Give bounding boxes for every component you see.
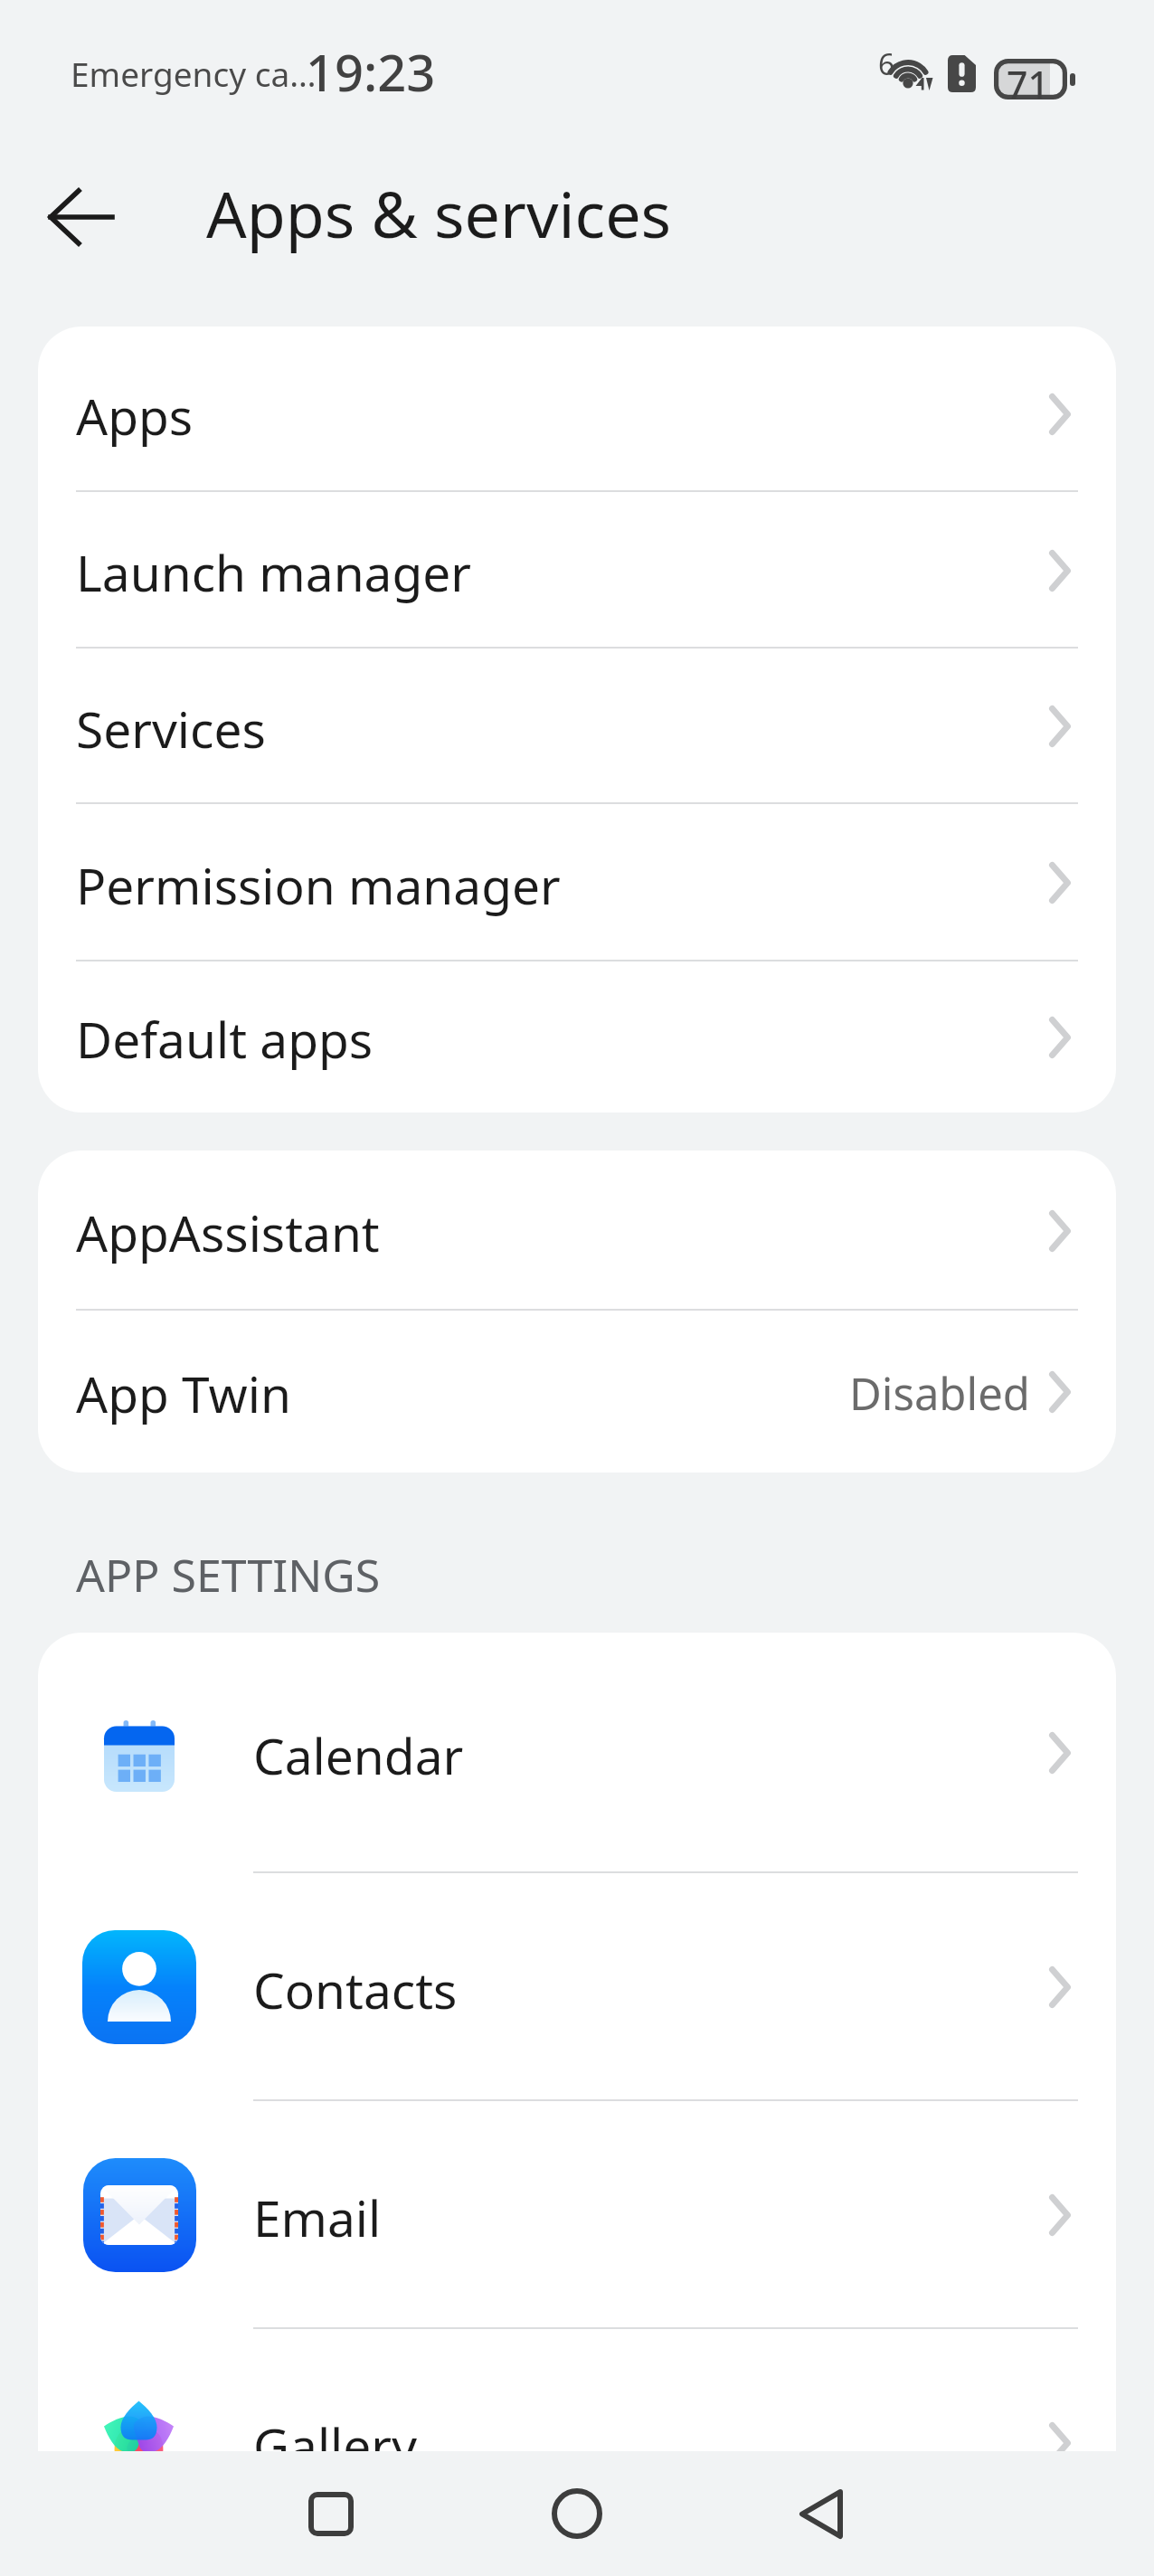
staticText: Emergency ca… [71,51,317,96]
staticText: AppAssistant [76,1198,380,1266]
button[interactable]: Email [38,2101,1116,2329]
button[interactable]: Contacts [38,1873,1116,2101]
button[interactable]: Launch manager [38,492,1116,649]
button[interactable]: Recent apps [268,2451,394,2576]
staticText: Gallery [253,2411,418,2479]
button[interactable]: Gallery [38,2329,1116,2557]
staticText: Launch manager [76,538,472,606]
staticText: 71 [1007,59,1049,99]
staticText: Permission manager [76,851,561,919]
staticText: 19:23 [306,37,436,106]
staticText: Email [253,2183,382,2251]
button[interactable]: AppAssistant [38,1151,1116,1311]
staticText: Default apps [76,1005,374,1073]
button[interactable]: Permission manager [38,804,1116,961]
button[interactable]: App Twin [38,1311,1116,1473]
staticText: Services [76,695,266,762]
button[interactable]: Calendar [38,1633,1116,1873]
button[interactable]: Default apps [38,961,1116,1113]
button[interactable]: Services [38,649,1116,804]
staticText: APP SETTINGS [76,1544,381,1605]
staticText: App Twin [76,1359,291,1427]
staticText: Disabled [849,1363,1030,1424]
button[interactable]: Home [514,2451,640,2576]
button[interactable]: Back [758,2451,884,2576]
staticText: Apps [76,382,194,450]
staticText: 6 [878,44,895,84]
staticText: Apps & services [206,170,672,256]
button[interactable]: Apps [38,336,1116,492]
button[interactable]: Back [17,154,144,280]
staticText: Contacts [253,1956,458,2023]
staticText: Calendar [253,1721,464,1789]
